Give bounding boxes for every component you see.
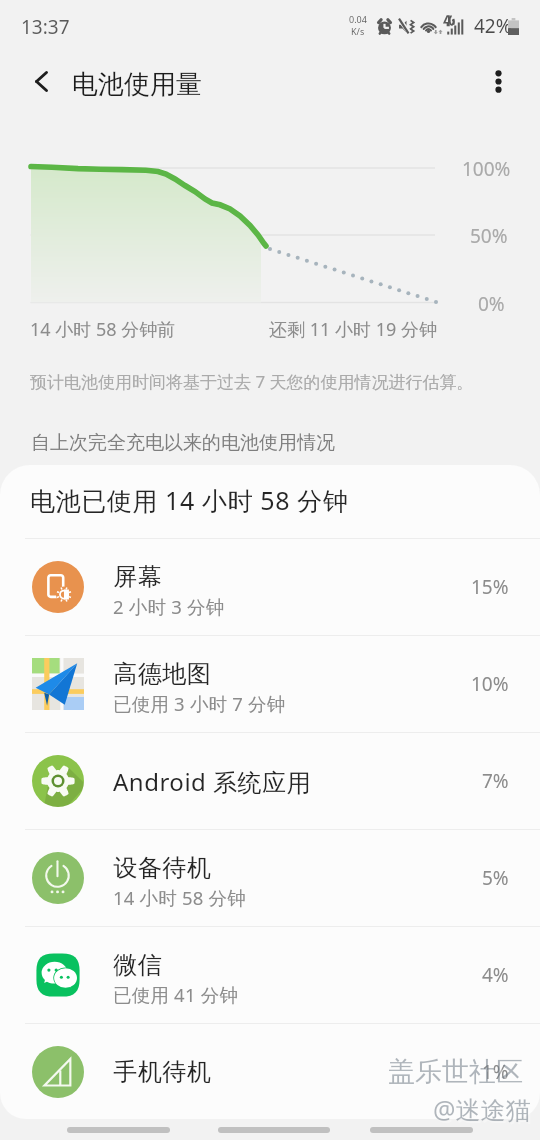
staticText: 电池已使用 14 小时 58 分钟 [30, 483, 349, 517]
staticText: 13:37 [21, 14, 70, 40]
staticText: 50% [470, 223, 508, 249]
staticText: 预计电池使用时间将基于过去 7 天您的使用情况进行估算。 [30, 370, 474, 393]
staticText: 手机待机 [113, 1057, 211, 1087]
button[interactable]: 高德地图 [0, 636, 540, 732]
staticText: 电池使用量 [72, 68, 202, 101]
button[interactable]: Recents [67, 1127, 170, 1133]
button[interactable]: 微信 [0, 927, 540, 1023]
staticText: 5% [482, 865, 509, 891]
button[interactable]: Home [218, 1127, 330, 1133]
button[interactable]: Android 系统应用 [0, 733, 540, 829]
staticText: 高德地图 [113, 659, 211, 689]
staticText: 100% [462, 156, 511, 182]
staticText: 14 小时 58 分钟 [113, 885, 246, 910]
staticText: 屏幕 [113, 562, 162, 592]
staticText: 42% [474, 13, 512, 39]
staticText: 2 小时 3 分钟 [113, 594, 225, 619]
staticText: 已使用 3 小时 7 分钟 [113, 691, 286, 716]
staticText: 14 小时 58 分钟前 [30, 317, 176, 342]
staticText: 微信 [113, 950, 162, 980]
staticText: 0% [478, 291, 505, 317]
button[interactable]: 设备待机 [0, 830, 540, 926]
staticText: @迷途猫 [435, 1094, 533, 1128]
button[interactable]: Back [16, 56, 66, 106]
button[interactable]: More options [473, 56, 523, 106]
button[interactable]: Back [370, 1127, 473, 1133]
staticText: 10% [471, 671, 509, 697]
button[interactable]: 手机待机 [0, 1024, 540, 1119]
staticText: 1% [482, 1059, 509, 1085]
staticText: 盖乐世社区 [390, 1057, 525, 1091]
staticText: 盖乐世社区 [388, 1055, 523, 1089]
staticText: 4% [482, 962, 509, 988]
staticText: @迷途猫 [433, 1092, 531, 1126]
staticText: 0.04 [349, 13, 367, 25]
staticText: 还剩 11 小时 19 分钟 [269, 317, 437, 342]
button[interactable]: 屏幕 [0, 539, 540, 635]
staticText: Android 系统应用 [113, 765, 312, 798]
staticText: 7% [482, 768, 509, 794]
staticText: 自上次完全充电以来的电池使用情况 [31, 431, 335, 455]
staticText: 设备待机 [113, 853, 211, 883]
staticText: 已使用 41 分钟 [113, 982, 239, 1007]
staticText: K/s [351, 25, 365, 37]
staticText: 15% [471, 574, 509, 600]
